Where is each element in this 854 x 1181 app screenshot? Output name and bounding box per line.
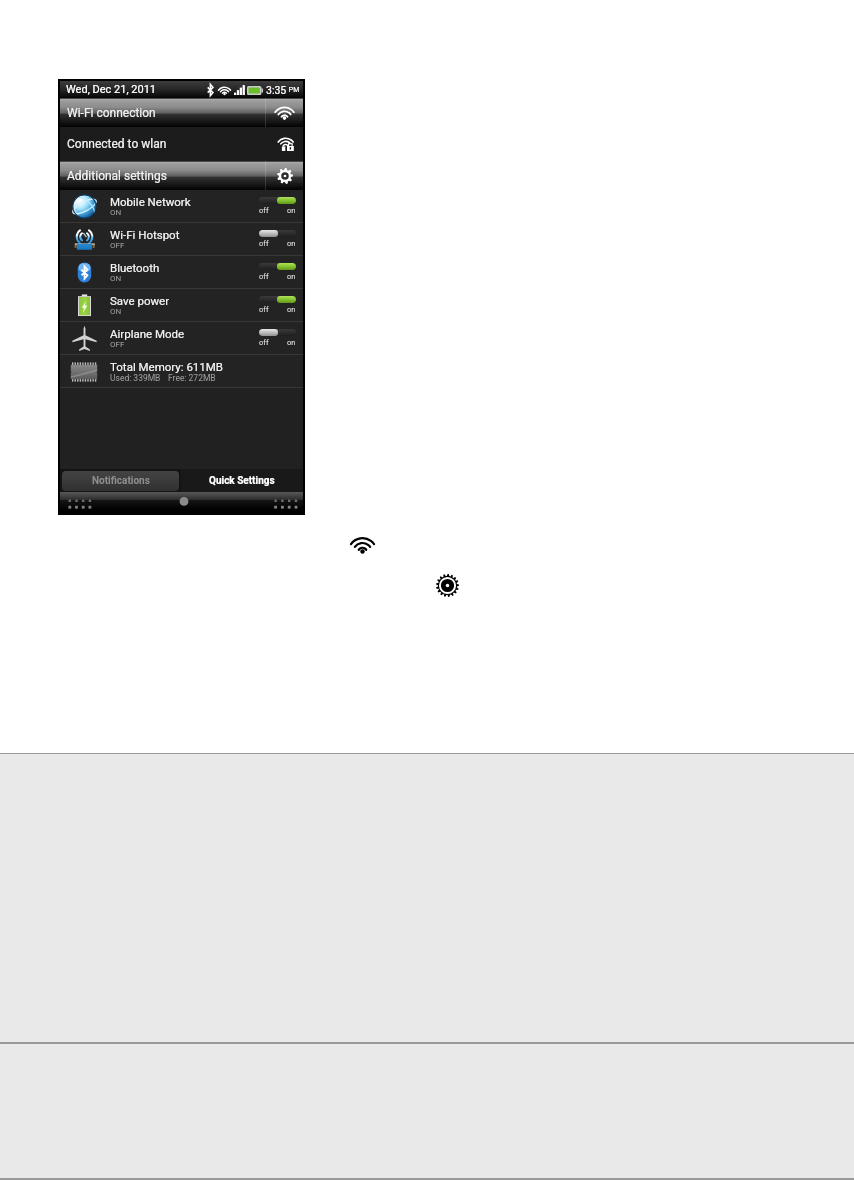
staticText: OFF xyxy=(110,241,125,250)
button[interactable]: Wi-Fi connection xyxy=(60,98,265,127)
staticText: Total Memory: 611MB xyxy=(110,360,223,373)
button[interactable]: Additional settings xyxy=(266,161,303,190)
button[interactable]: Notifications xyxy=(62,471,179,491)
button[interactable]: Wi-Fi xyxy=(351,534,374,555)
button[interactable]: Settings xyxy=(436,574,459,597)
staticText: ON xyxy=(110,307,122,316)
staticText: 3:35 xyxy=(266,84,287,96)
staticText: on xyxy=(287,239,296,248)
staticText: off xyxy=(259,338,269,347)
staticText: Used: 339MB xyxy=(110,373,161,383)
staticText: Quick Settings xyxy=(209,475,275,487)
staticText: on xyxy=(287,206,296,215)
staticText: Wi-Fi Hotspot xyxy=(110,228,180,241)
staticText: off xyxy=(259,206,269,215)
button[interactable]: Wi-Fi connection xyxy=(266,98,303,127)
staticText: on xyxy=(287,305,296,314)
staticText: ON xyxy=(110,274,122,283)
button[interactable]: Save power xyxy=(60,289,303,322)
button[interactable]: Mobile Network xyxy=(60,190,303,223)
button[interactable]: Connected to wlan xyxy=(60,127,303,161)
staticText: on xyxy=(287,338,296,347)
button[interactable]: Bluetooth xyxy=(60,256,303,289)
staticText: Wed, Dec 21, 2011 xyxy=(66,83,157,96)
button[interactable]: Quick Settings xyxy=(181,469,303,492)
staticText: Mobile Network xyxy=(110,195,191,208)
staticText: on xyxy=(287,272,296,281)
staticText: Wi-Fi connection xyxy=(67,106,156,120)
button[interactable]: Additional settings xyxy=(60,161,265,190)
staticText: off xyxy=(259,272,269,281)
staticText: Free: 272MB xyxy=(168,373,216,383)
staticText: Connected to wlan xyxy=(67,137,167,151)
staticText: PM xyxy=(287,86,300,94)
staticText: off xyxy=(259,305,269,314)
staticText: OFF xyxy=(110,340,125,349)
staticText: Bluetooth xyxy=(110,261,160,274)
staticText: Additional settings xyxy=(67,169,167,183)
staticText: ON xyxy=(110,208,122,217)
button[interactable]: Wi-Fi Hotspot xyxy=(60,223,303,256)
staticText: Airplane Mode xyxy=(110,327,185,340)
button[interactable]: Total Memory: 611MB xyxy=(60,355,303,388)
staticText: off xyxy=(259,239,269,248)
staticText: Save power xyxy=(110,294,170,307)
button[interactable]: Airplane Mode xyxy=(60,322,303,355)
staticText: Notifications xyxy=(92,475,150,487)
